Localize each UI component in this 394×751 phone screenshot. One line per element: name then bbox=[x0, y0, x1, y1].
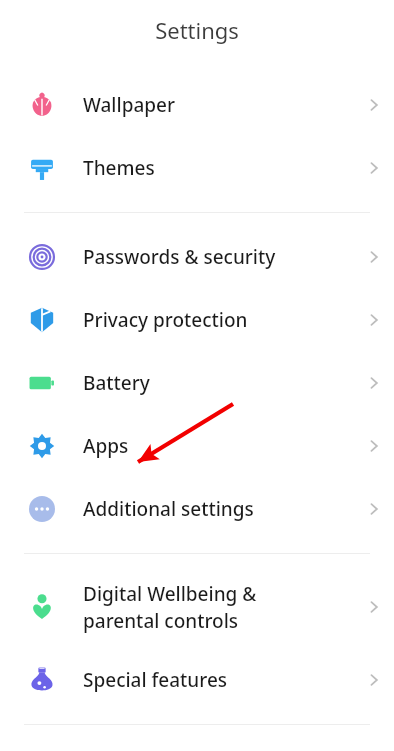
staticText: Apps bbox=[83, 433, 354, 459]
staticText: Passwords & security bbox=[83, 244, 354, 270]
button[interactable]: Digital Wellbeing & parental controls bbox=[0, 566, 394, 648]
staticText: Battery bbox=[83, 370, 354, 396]
staticText: Settings bbox=[155, 15, 239, 45]
button[interactable]: Privacy protection bbox=[0, 288, 394, 351]
button[interactable]: Wallpaper bbox=[0, 73, 394, 136]
staticText: Digital Wellbeing & parental controls bbox=[83, 581, 354, 634]
button[interactable]: Themes bbox=[0, 136, 394, 199]
button[interactable]: Additional settings bbox=[0, 477, 394, 540]
button[interactable]: Battery bbox=[0, 351, 394, 414]
staticText: Additional settings bbox=[83, 496, 354, 522]
staticText: Privacy protection bbox=[83, 307, 354, 333]
button[interactable]: Special features bbox=[0, 648, 394, 711]
button[interactable]: Apps bbox=[0, 414, 394, 477]
button[interactable]: Passwords & security bbox=[0, 225, 394, 288]
staticText: Themes bbox=[83, 155, 354, 181]
staticText: Special features bbox=[83, 667, 354, 693]
staticText: Wallpaper bbox=[83, 92, 354, 118]
